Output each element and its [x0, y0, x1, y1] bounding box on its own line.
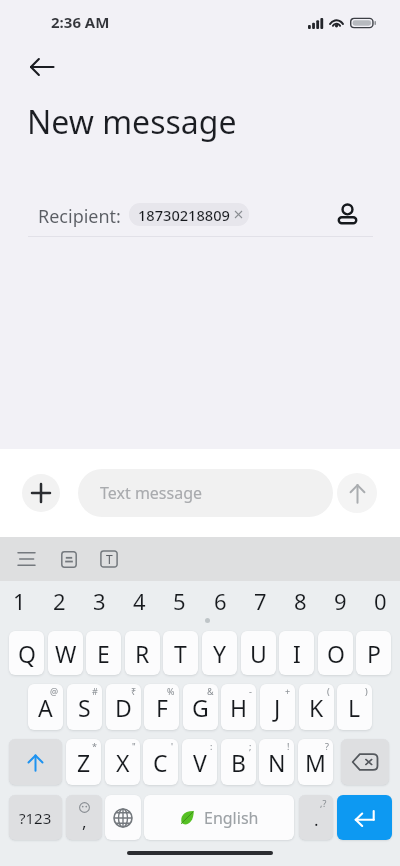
button[interactable]: Enter: [337, 795, 392, 840]
staticText: -: [249, 685, 252, 697]
staticText: T: [174, 638, 187, 669]
button[interactable]: Text editing: [91, 541, 127, 577]
button[interactable]: A: [28, 684, 63, 730]
button[interactable]: F: [144, 684, 179, 730]
button[interactable]: L: [337, 684, 372, 730]
staticText: K: [309, 692, 324, 723]
staticText: L: [348, 692, 361, 723]
button[interactable]: Add attachment: [22, 474, 60, 512]
button[interactable]: R: [125, 631, 160, 675]
button[interactable]: 6: [201, 586, 239, 616]
staticText: V: [193, 747, 207, 778]
staticText: 2: [53, 586, 66, 616]
button[interactable]: U: [241, 631, 276, 675]
staticText: P: [367, 638, 381, 669]
staticText: 2:36 AM: [51, 12, 110, 32]
button[interactable]: 4: [120, 586, 158, 616]
button[interactable]: W: [48, 631, 83, 675]
staticText: Y: [213, 638, 227, 669]
button[interactable]: 9: [321, 586, 359, 616]
button[interactable]: Toolbar menu: [8, 541, 44, 577]
staticText: J: [274, 692, 281, 723]
staticText: +: [285, 685, 291, 697]
button[interactable]: Y: [202, 631, 237, 675]
staticText: (: [327, 685, 330, 697]
button[interactable]: I: [279, 631, 314, 675]
button[interactable]: Back: [18, 43, 66, 91]
button[interactable]: Choose contact: [325, 192, 369, 236]
button[interactable]: Backspace: [341, 739, 389, 785]
staticText: S: [78, 692, 91, 723]
button[interactable]: 2: [40, 586, 78, 616]
staticText: ,?: [320, 797, 327, 809]
staticText: T: [106, 551, 113, 567]
staticText: E: [97, 638, 110, 669]
staticText: M: [305, 747, 326, 778]
button[interactable]: C: [143, 739, 178, 785]
staticText: 3: [93, 586, 106, 616]
button[interactable]: E: [86, 631, 121, 675]
button[interactable]: Clipboard: [51, 541, 87, 577]
button[interactable]: 0: [361, 586, 399, 616]
staticText: U: [250, 638, 267, 669]
staticText: N: [268, 747, 286, 778]
button[interactable]: D: [106, 684, 141, 730]
staticText: :: [210, 740, 213, 752]
button[interactable]: Emoji and comma: [66, 795, 102, 840]
button[interactable]: 3: [80, 586, 118, 616]
staticText: 9: [334, 586, 347, 616]
button[interactable]: B: [221, 739, 256, 785]
button[interactable]: 1: [0, 586, 38, 616]
button[interactable]: X: [105, 739, 140, 785]
button[interactable]: M: [298, 739, 333, 785]
staticText: Q: [18, 638, 36, 669]
staticText: ?: [325, 740, 329, 752]
button[interactable]: 18730218809: [129, 203, 249, 226]
button[interactable]: O: [318, 631, 353, 675]
staticText: ;: [249, 740, 252, 752]
staticText: %: [167, 685, 175, 697]
staticText: F: [156, 692, 168, 723]
staticText: ): [365, 685, 368, 697]
button[interactable]: Send: [337, 473, 377, 513]
button[interactable]: 5: [160, 586, 198, 616]
button[interactable]: K: [299, 684, 334, 730]
button[interactable]: J: [260, 684, 295, 730]
button[interactable]: G: [183, 684, 218, 730]
staticText: 4: [133, 586, 146, 616]
button[interactable]: Switch language: [105, 795, 141, 840]
button[interactable]: ?123: [9, 795, 62, 840]
button[interactable]: Z: [66, 739, 101, 785]
staticText: Recipient:: [38, 204, 121, 229]
staticText: 5: [173, 586, 186, 616]
staticText: ?123: [19, 808, 52, 828]
button[interactable]: T: [163, 631, 198, 675]
staticText: 8: [294, 586, 307, 616]
staticText: Text message: [100, 482, 203, 504]
button[interactable]: Q: [9, 631, 44, 675]
staticText: 7: [254, 586, 267, 616]
button[interactable]: V: [182, 739, 217, 785]
staticText: B: [231, 747, 246, 778]
button[interactable]: Text message: [78, 469, 333, 517]
button[interactable]: English: [144, 795, 294, 840]
staticText: .: [314, 808, 319, 831]
staticText: I: [293, 638, 301, 669]
staticText: ": [132, 740, 136, 752]
button[interactable]: Shift: [9, 739, 62, 785]
button[interactable]: S: [67, 684, 102, 730]
button[interactable]: N: [259, 739, 294, 785]
staticText: English: [204, 807, 259, 829]
button[interactable]: H: [221, 684, 256, 730]
button[interactable]: 8: [281, 586, 319, 616]
staticText: W: [55, 638, 77, 669]
staticText: H: [230, 692, 248, 723]
staticText: D: [115, 692, 132, 723]
button[interactable]: P: [356, 631, 391, 675]
staticText: ,: [82, 810, 87, 833]
staticText: Z: [77, 747, 91, 778]
staticText: ': [171, 740, 174, 752]
staticText: 1: [13, 586, 26, 616]
button[interactable]: Period: [299, 795, 333, 840]
button[interactable]: 7: [241, 586, 279, 616]
